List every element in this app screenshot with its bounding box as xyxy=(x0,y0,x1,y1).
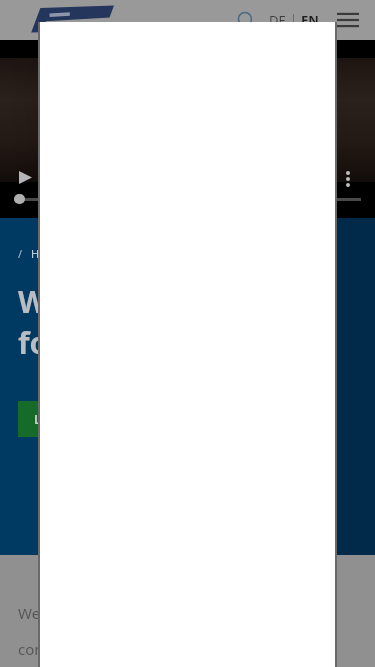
staticText: EN xyxy=(301,11,319,29)
staticText: / xyxy=(18,246,23,261)
button[interactable]: Learn more xyxy=(18,401,168,437)
staticText: DE xyxy=(269,11,286,29)
staticText: connecting markets xyxy=(18,639,158,659)
button[interactable]: Home xyxy=(31,246,63,261)
button[interactable]: DE xyxy=(267,11,288,29)
button[interactable]: More options xyxy=(335,166,361,192)
button[interactable]: Menu xyxy=(331,3,365,37)
staticText: Home xyxy=(31,246,63,261)
staticText: We are your partner xyxy=(18,603,160,623)
button[interactable]: Search xyxy=(229,3,263,37)
button[interactable]: Play xyxy=(12,164,38,190)
button[interactable]: KAS home xyxy=(22,5,114,35)
staticText: We deliver xyxy=(18,281,176,322)
button[interactable]: EN xyxy=(299,11,321,29)
staticText: Learn more xyxy=(34,410,108,428)
staticText: for you xyxy=(18,322,125,363)
